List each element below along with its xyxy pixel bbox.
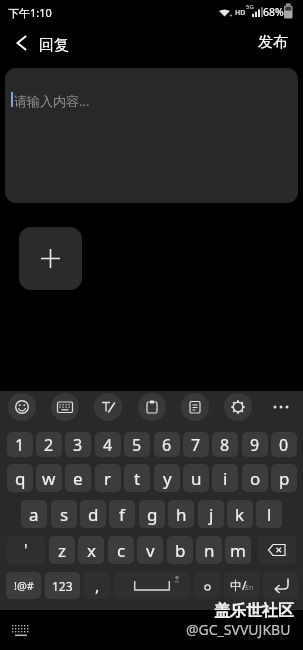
staticText: 下午1:10 <box>8 5 52 20</box>
button[interactable]: i <box>212 464 238 492</box>
button[interactable]: u <box>183 464 209 492</box>
staticText: , <box>95 575 100 597</box>
button[interactable]: q <box>7 464 33 492</box>
button[interactable]: m <box>225 536 251 564</box>
staticText: 5 <box>132 434 142 456</box>
button[interactable]: 5 <box>124 432 150 457</box>
button[interactable]: t <box>124 464 150 492</box>
button[interactable]: 6 <box>154 432 180 457</box>
button[interactable]: l <box>256 500 282 528</box>
staticText: d <box>88 503 99 526</box>
button[interactable] <box>138 393 166 421</box>
staticText: 7 <box>191 434 201 456</box>
button[interactable]: x <box>78 536 104 564</box>
button[interactable]: 3 <box>65 432 91 457</box>
button[interactable]: ' <box>7 536 45 564</box>
button[interactable]: n <box>196 536 222 564</box>
button[interactable]: 中/ <box>224 572 260 599</box>
staticText: !@# <box>14 578 34 593</box>
staticText: 9 <box>250 434 260 456</box>
staticText: h <box>176 503 187 526</box>
button[interactable]: j <box>198 500 224 528</box>
button[interactable]: !@# <box>6 572 41 599</box>
staticText: 中/ <box>230 577 247 593</box>
button[interactable]: s <box>51 500 77 528</box>
button[interactable]: 发布 <box>250 28 296 56</box>
button[interactable]: 1 <box>7 432 33 457</box>
button[interactable] <box>6 30 36 56</box>
staticText: 1 <box>15 434 25 456</box>
button[interactable] <box>194 572 220 599</box>
staticText: b <box>175 539 186 562</box>
button[interactable]: 4 <box>95 432 121 457</box>
staticText: 0 <box>279 434 289 456</box>
button[interactable] <box>8 393 36 421</box>
button[interactable]: b <box>167 536 193 564</box>
button[interactable]: 请输入内容... <box>5 68 298 203</box>
staticText: o <box>250 467 261 490</box>
staticText: m <box>230 539 246 562</box>
button[interactable]: e <box>65 464 91 492</box>
staticText: l <box>267 503 272 526</box>
button[interactable] <box>258 536 296 564</box>
staticText: f <box>119 503 125 526</box>
staticText: @GC_SVVUJKBU <box>186 620 291 639</box>
staticText: HD <box>235 8 246 18</box>
button[interactable]: d <box>80 500 106 528</box>
button[interactable]: 123 <box>45 572 80 599</box>
button[interactable]: p <box>271 464 297 492</box>
button[interactable]: a <box>21 500 47 528</box>
button[interactable] <box>224 393 252 421</box>
staticText: g <box>147 503 158 526</box>
staticText: t <box>134 467 141 490</box>
staticText: 8 <box>220 434 230 456</box>
staticText: En <box>245 583 254 593</box>
staticText: 回复 <box>39 36 69 55</box>
staticText: 68% <box>263 5 284 19</box>
button[interactable]: c <box>108 536 134 564</box>
staticText: n <box>204 539 215 562</box>
button[interactable]: r <box>95 464 121 492</box>
button[interactable] <box>51 393 79 421</box>
button[interactable]: f <box>109 500 135 528</box>
button[interactable]: , <box>84 572 110 599</box>
button[interactable] <box>19 227 82 290</box>
staticText: 5G <box>246 3 254 11</box>
button[interactable] <box>114 572 190 599</box>
staticText: k <box>235 503 245 526</box>
staticText: 123 <box>52 578 73 594</box>
button[interactable]: z <box>49 536 75 564</box>
staticText: 请输入内容... <box>14 92 90 110</box>
staticText: 4 <box>103 434 113 456</box>
button[interactable]: 8 <box>212 432 238 457</box>
button[interactable]: v <box>137 536 163 564</box>
staticText: s <box>60 503 69 526</box>
button[interactable]: 9 <box>242 432 268 457</box>
button[interactable]: g <box>139 500 165 528</box>
button[interactable]: k <box>227 500 253 528</box>
staticText: 2 <box>44 434 54 456</box>
button[interactable]: w <box>36 464 62 492</box>
button[interactable]: 0 <box>271 432 297 457</box>
button[interactable]: 7 <box>183 432 209 457</box>
staticText: q <box>15 467 26 490</box>
button[interactable] <box>181 393 209 421</box>
button[interactable] <box>94 393 122 421</box>
staticText: 6 <box>162 434 172 456</box>
button[interactable]: h <box>168 500 194 528</box>
button[interactable] <box>263 572 299 599</box>
button[interactable] <box>267 393 295 421</box>
staticText: 盖乐世社区 <box>214 601 294 621</box>
staticText: r <box>104 467 112 490</box>
staticText: 3 <box>73 434 83 456</box>
staticText: 发布 <box>258 33 288 52</box>
staticText: ' <box>24 539 28 561</box>
staticText: a <box>29 503 39 526</box>
staticText: z <box>58 539 66 562</box>
staticText: u <box>191 467 202 490</box>
button[interactable]: 2 <box>36 432 62 457</box>
button[interactable]: y <box>154 464 180 492</box>
button[interactable]: o <box>242 464 268 492</box>
staticText: p <box>279 467 290 490</box>
staticText: j <box>209 503 214 526</box>
